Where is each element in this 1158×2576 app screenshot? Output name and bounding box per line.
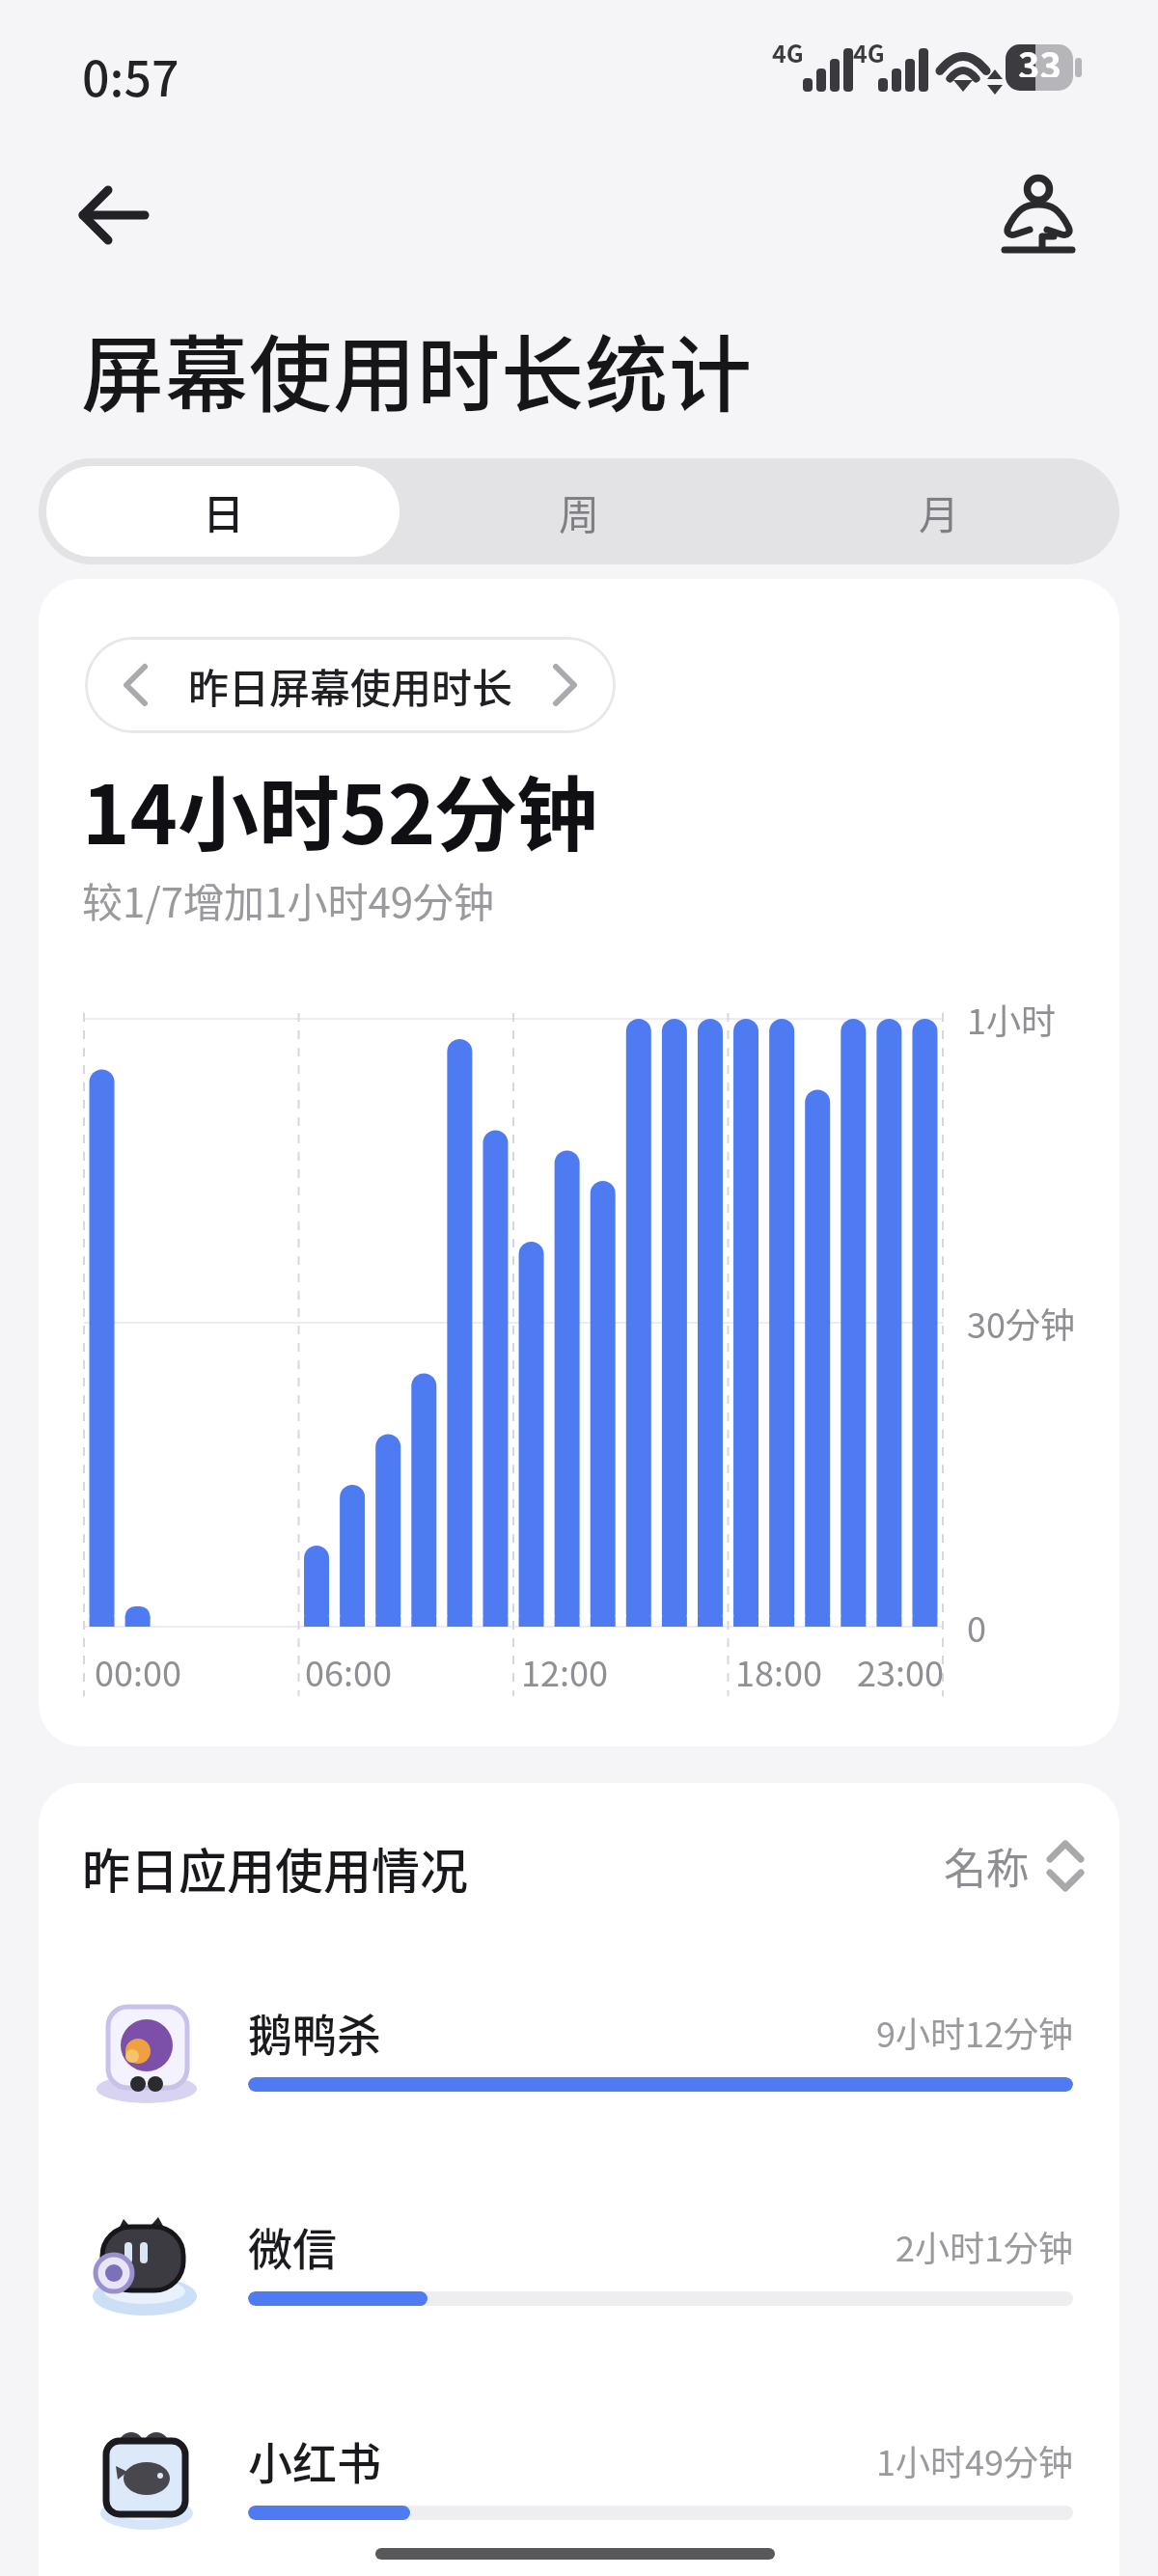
- staticText: 昨日应用使用情况: [82, 1833, 468, 1893]
- staticText: 1小时49分钟: [876, 2435, 1073, 2485]
- staticText: 微信: [248, 2214, 337, 2279]
- button[interactable]: 周: [400, 466, 759, 557]
- button[interactable]: [82, 2393, 1076, 2571]
- staticText: 2小时1分钟: [896, 2221, 1073, 2271]
- staticText: 30分钟: [967, 1298, 1075, 1348]
- staticText: 23:00: [857, 1646, 944, 1696]
- button[interactable]: 月: [759, 466, 1119, 557]
- staticText: 周: [559, 482, 600, 541]
- staticText: 18:00: [735, 1646, 822, 1696]
- button[interactable]: [82, 2179, 1076, 2357]
- staticText: 12:00: [521, 1646, 608, 1696]
- button[interactable]: [68, 174, 160, 257]
- button[interactable]: 日: [46, 466, 400, 557]
- staticText: 4G: [772, 35, 804, 64]
- button[interactable]: [992, 169, 1085, 265]
- staticText: 9小时12分钟: [876, 2007, 1073, 2057]
- staticText: 14小时52分钟: [82, 751, 598, 866]
- staticText: 月: [919, 482, 960, 541]
- staticText: 屏幕使用时长统计: [81, 309, 753, 421]
- staticText: 较1/7增加1小时49分钟: [82, 870, 495, 924]
- button[interactable]: [82, 1964, 1076, 2143]
- staticText: 1小时: [967, 994, 1056, 1044]
- staticText: 00:00: [95, 1646, 181, 1696]
- staticText: 4G: [853, 35, 885, 64]
- button[interactable]: [931, 1833, 1086, 1893]
- staticText: 名称: [944, 1835, 1029, 1891]
- staticText: 0:57: [82, 41, 179, 98]
- staticText: 06:00: [305, 1646, 392, 1696]
- staticText: 33: [1018, 37, 1061, 77]
- staticText: 鹅鸭杀: [248, 2000, 381, 2065]
- staticText: 小红书: [248, 2428, 381, 2493]
- staticText: 昨日屏幕使用时长: [188, 656, 513, 715]
- staticText: 0: [967, 1602, 986, 1652]
- button[interactable]: 昨日屏幕使用时长: [85, 637, 616, 733]
- staticText: 日: [203, 481, 244, 541]
